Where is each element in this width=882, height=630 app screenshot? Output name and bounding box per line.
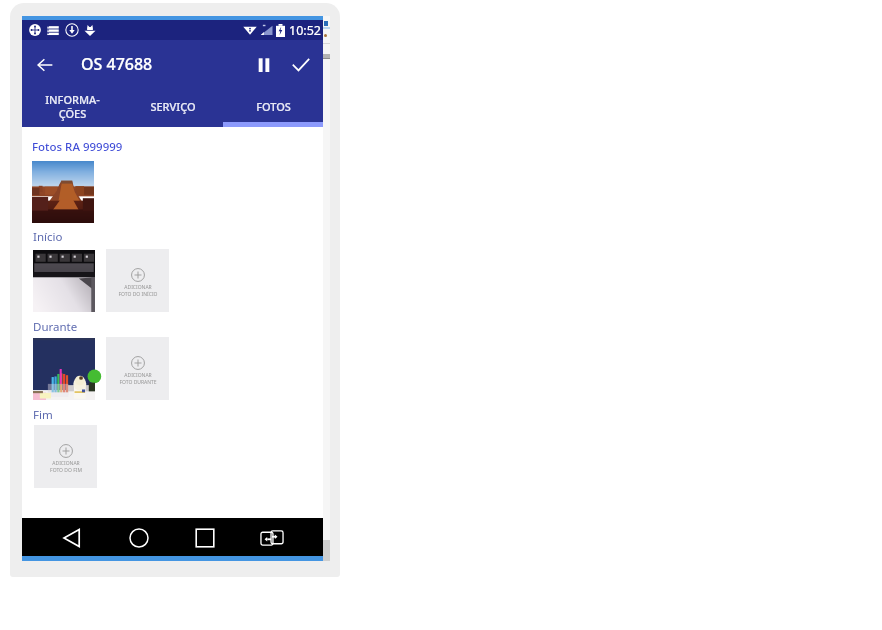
staticText: FOTOS xyxy=(256,99,291,114)
button[interactable]: Home xyxy=(125,524,153,552)
button[interactable]: Rotate screen xyxy=(258,524,286,552)
staticText: SERVIÇO xyxy=(150,99,196,114)
staticText: FOTO DURANTE xyxy=(119,379,157,386)
button[interactable]: Photo xyxy=(33,250,95,312)
button[interactable]: FOTOS xyxy=(223,86,323,127)
button[interactable]: Back xyxy=(58,524,86,552)
button[interactable]: Photo xyxy=(33,338,95,400)
staticText: INFORMA- ÇÕES xyxy=(45,92,100,121)
staticText: Fotos RA 999999 xyxy=(32,139,123,155)
staticText: ADICIONAR xyxy=(124,284,152,291)
button[interactable]: ADICIONAR xyxy=(106,249,169,312)
button[interactable]: INFORMA- ÇÕES xyxy=(22,86,123,127)
staticText: Início xyxy=(33,229,63,245)
staticText: Fim xyxy=(33,407,53,423)
staticText: ADICIONAR xyxy=(124,372,152,379)
staticText: FOTO DO INÍCIO xyxy=(118,291,158,298)
button[interactable]: Pause xyxy=(250,51,277,78)
button[interactable]: Recents xyxy=(191,524,219,552)
button[interactable]: Confirm xyxy=(287,51,314,78)
staticText: FOTO DO FIM xyxy=(50,467,82,474)
staticText: 10:52 xyxy=(289,22,321,39)
button[interactable]: ADICIONAR xyxy=(106,337,169,400)
button[interactable]: ADICIONAR xyxy=(34,425,97,488)
button[interactable]: Back xyxy=(31,51,58,78)
staticText: OS 47688 xyxy=(81,53,153,75)
staticText: ADICIONAR xyxy=(52,460,80,467)
button[interactable]: SERVIÇO xyxy=(123,86,223,127)
staticText: Durante xyxy=(33,319,78,335)
button[interactable]: Photo xyxy=(32,161,94,223)
